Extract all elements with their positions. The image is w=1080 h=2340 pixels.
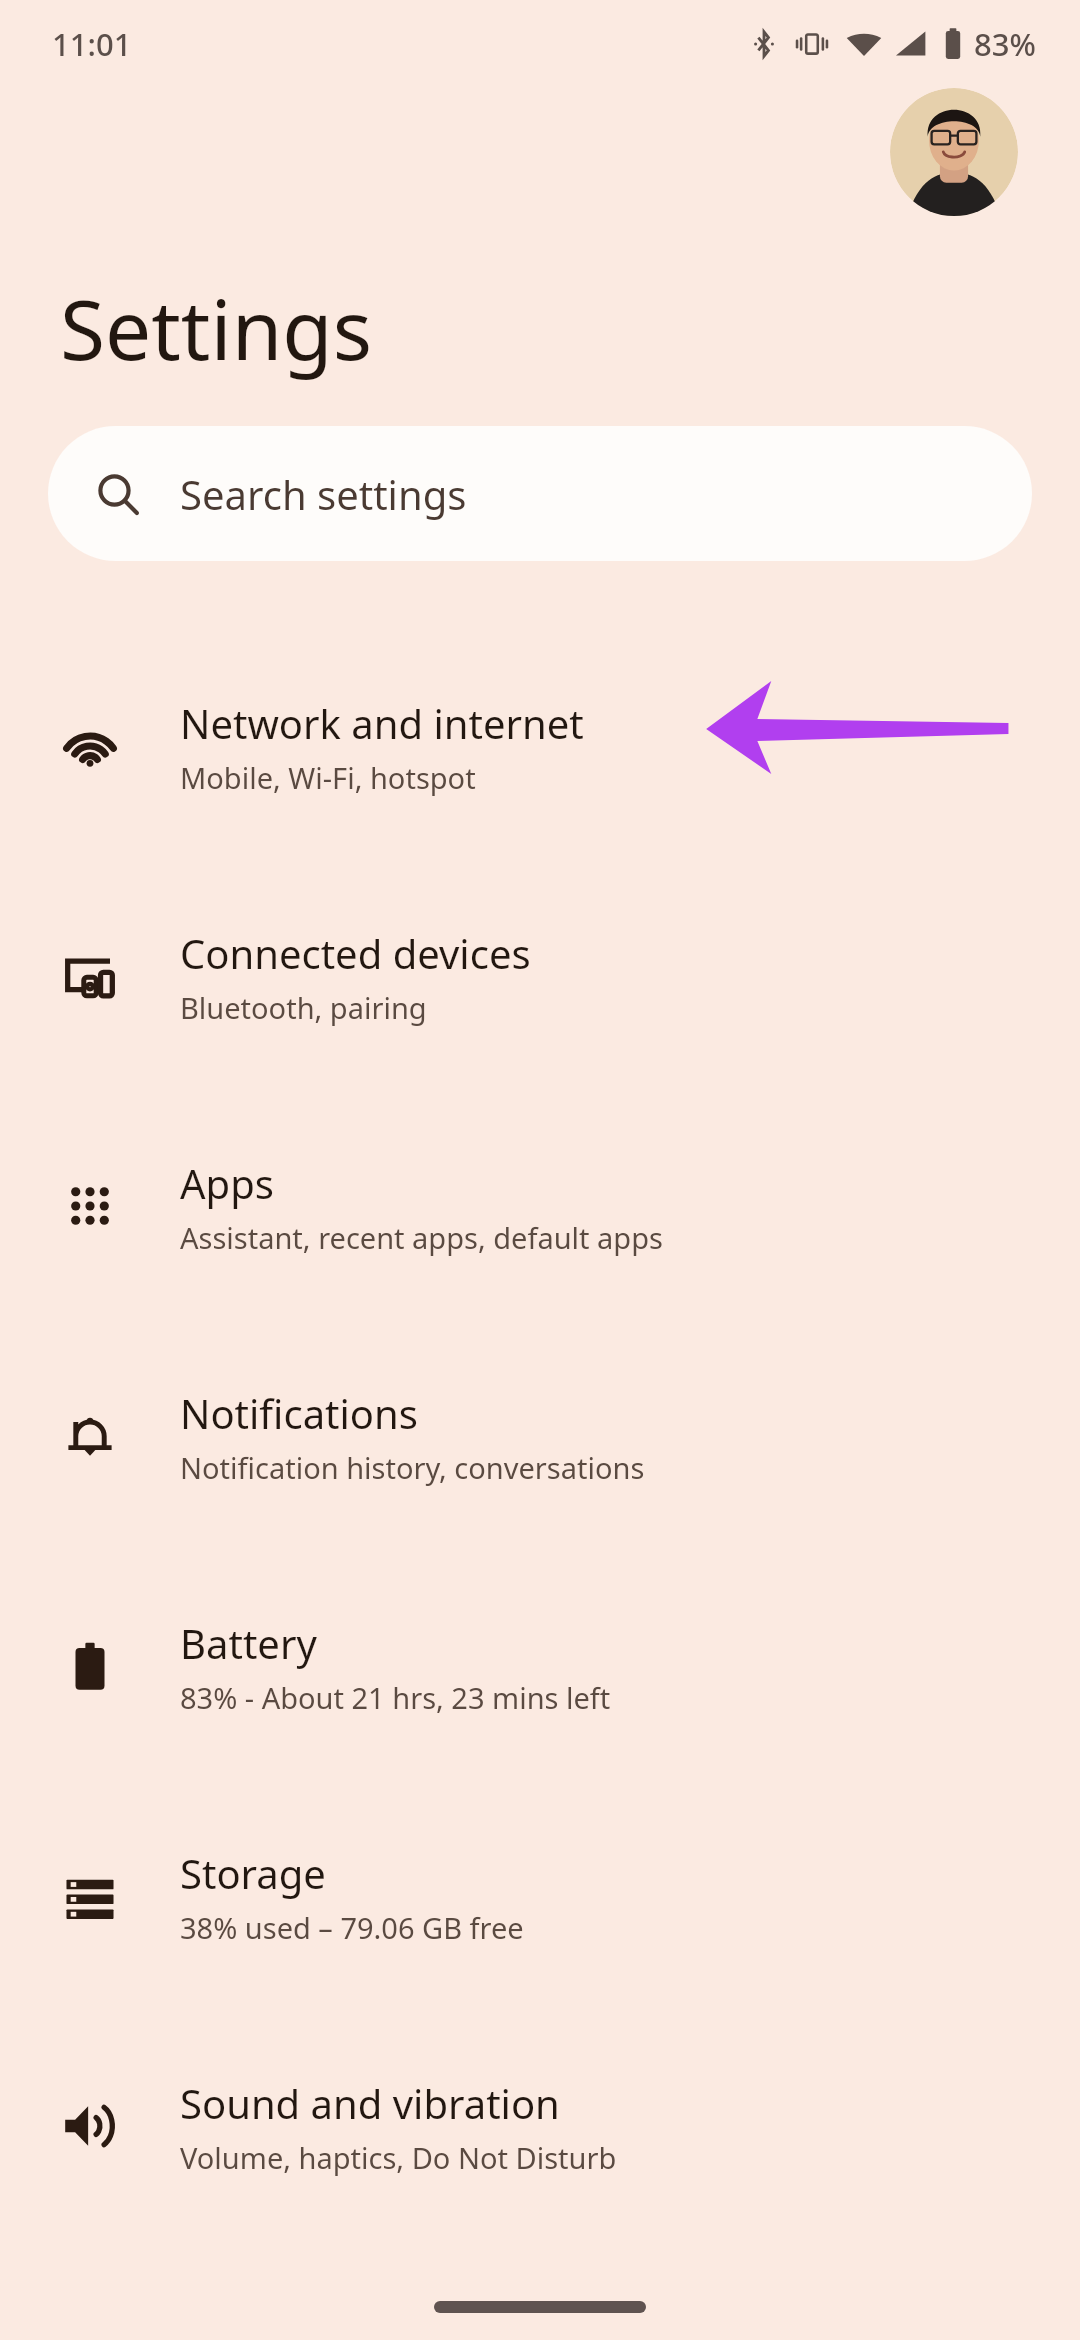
staticText: Search settings bbox=[180, 467, 467, 521]
staticText: Mobile, Wi-Fi, hotspot bbox=[180, 758, 476, 797]
staticText: Settings bbox=[60, 272, 373, 384]
button[interactable]: Apps bbox=[0, 1091, 1080, 1321]
button[interactable]: Connected devices bbox=[0, 861, 1080, 1091]
staticText: Battery bbox=[180, 1616, 317, 1670]
staticText: Apps bbox=[180, 1156, 274, 1210]
button[interactable]: Account bbox=[890, 88, 1018, 216]
staticText: Connected devices bbox=[180, 926, 531, 980]
staticText: 38% used – 79.06 GB free bbox=[180, 1908, 524, 1947]
staticText: 83% - About 21 hrs, 23 mins left bbox=[180, 1678, 611, 1717]
staticText: Notifications bbox=[180, 1386, 418, 1440]
staticText: Bluetooth, pairing bbox=[180, 988, 427, 1027]
staticText: Sound and vibration bbox=[180, 2076, 560, 2130]
staticText: 83% bbox=[974, 23, 1036, 65]
button[interactable]: Sound and vibration bbox=[0, 2011, 1080, 2241]
staticText: 11:01 bbox=[52, 23, 132, 65]
button[interactable]: Storage bbox=[0, 1781, 1080, 2011]
button[interactable]: Battery bbox=[0, 1551, 1080, 1781]
staticText: Volume, haptics, Do Not Disturb bbox=[180, 2138, 617, 2177]
staticText: Network and internet bbox=[180, 696, 584, 750]
staticText: Storage bbox=[180, 1846, 326, 1900]
staticText: Notification history, conversations bbox=[180, 1448, 645, 1487]
button[interactable]: Search settings bbox=[48, 426, 1032, 561]
button[interactable]: Notifications bbox=[0, 1321, 1080, 1551]
staticText: Assistant, recent apps, default apps bbox=[180, 1218, 663, 1257]
button[interactable]: Network and internet bbox=[0, 631, 1080, 861]
